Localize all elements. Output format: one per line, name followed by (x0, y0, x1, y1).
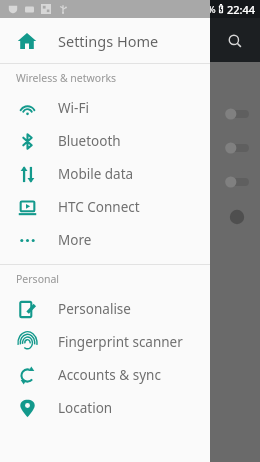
button[interactable]: More (0, 223, 210, 256)
staticText: Wireless & networks (16, 71, 117, 85)
staticText: Settings Home (58, 31, 159, 51)
staticText: 22:44 (227, 2, 256, 17)
button[interactable]: Mobile data (0, 157, 210, 190)
button[interactable]: Bluetooth (0, 124, 210, 157)
staticText: 78% (197, 3, 216, 16)
button[interactable]: Toggle (224, 107, 250, 121)
staticText: More (58, 231, 92, 249)
staticText: Fingerprint scanner (58, 333, 183, 351)
staticText: Personalise (58, 300, 131, 318)
staticText: Wi-Fi (58, 99, 89, 117)
button[interactable]: Location (0, 391, 210, 424)
staticText: HTC Connect (58, 198, 140, 216)
button[interactable]: Accounts & sync (0, 358, 210, 391)
staticText: Mobile data (58, 165, 134, 183)
button[interactable]: Personalise (0, 292, 210, 325)
staticText: Personal (16, 272, 60, 286)
button[interactable]: Settings Home (0, 18, 210, 63)
button[interactable]: Toggle (224, 175, 250, 189)
button[interactable]: HTC Connect (0, 190, 210, 223)
button[interactable]: Toggle (224, 141, 250, 155)
button[interactable]: Fingerprint scanner (0, 325, 210, 358)
button[interactable]: Wi-Fi (0, 91, 210, 124)
button[interactable]: Option (228, 208, 246, 226)
staticText: Accounts & sync (58, 366, 161, 384)
staticText: Bluetooth (58, 132, 121, 150)
button[interactable]: Search (222, 28, 248, 54)
staticText: Location (58, 399, 113, 417)
